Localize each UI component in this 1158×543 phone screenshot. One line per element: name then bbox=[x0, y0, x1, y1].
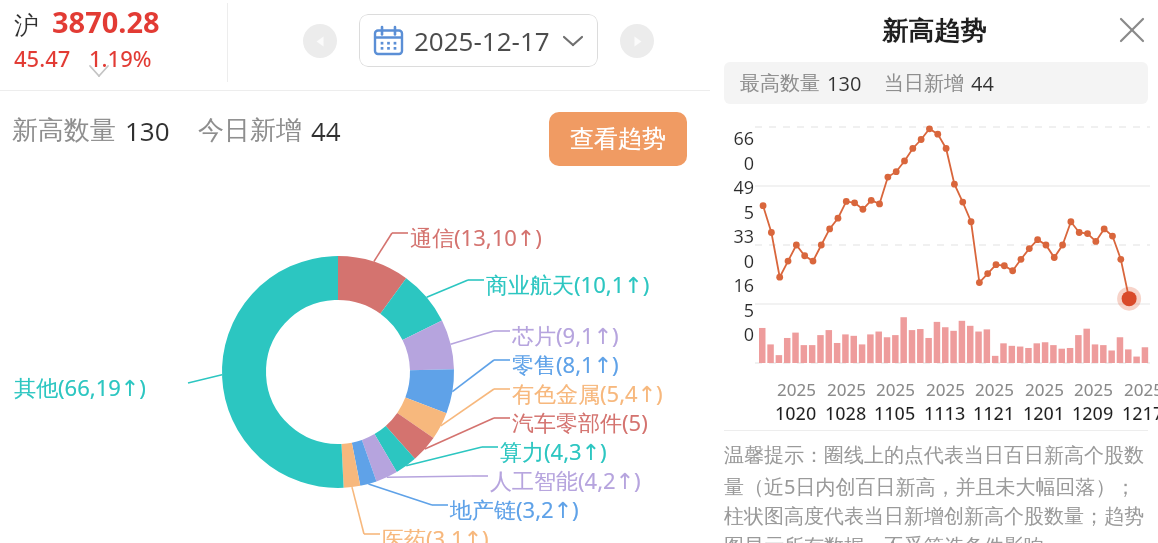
staticText: 1113 bbox=[924, 401, 966, 426]
staticText: 通信(13,10↑) bbox=[410, 222, 542, 252]
staticText: 3870.28 bbox=[52, 2, 160, 41]
staticText: 495 bbox=[724, 175, 754, 225]
staticText: 0 bbox=[724, 322, 754, 347]
staticText: 2025 bbox=[1124, 378, 1158, 401]
staticText: 商业航天(10,1↑) bbox=[486, 269, 650, 299]
staticText: 沪 bbox=[14, 10, 39, 41]
button[interactable]: 2025-12-17 bbox=[359, 14, 598, 67]
staticText: 660 bbox=[724, 126, 754, 176]
staticText: 人工智能(4,2↑) bbox=[490, 465, 641, 495]
staticText: 165 bbox=[724, 273, 754, 323]
staticText: 新高趋势 bbox=[882, 15, 986, 48]
staticText: 最高数量 bbox=[740, 71, 820, 96]
staticText: 1.19% bbox=[89, 43, 152, 73]
staticText: 1217 bbox=[1122, 401, 1158, 426]
button[interactable]: Next day bbox=[620, 24, 654, 58]
staticText: 2025 bbox=[1074, 378, 1113, 401]
button[interactable]: Close bbox=[1110, 8, 1154, 52]
staticText: 有色金属(5,4↑) bbox=[512, 378, 663, 408]
staticText: 1105 bbox=[874, 401, 916, 426]
staticText: 2025 bbox=[777, 378, 816, 401]
staticText: 45.47 bbox=[14, 43, 71, 73]
button[interactable]: Previous day bbox=[303, 24, 337, 58]
staticText: 其他(66,19↑) bbox=[14, 372, 146, 402]
staticText: 今日新增 bbox=[198, 114, 302, 147]
staticText: 芯片(9,1↑) bbox=[512, 320, 619, 350]
staticText: 查看趋势 bbox=[570, 124, 666, 154]
staticText: 2025 bbox=[827, 378, 866, 401]
staticText: 1201 bbox=[1023, 401, 1065, 426]
button[interactable]: 查看趋势 bbox=[549, 112, 687, 166]
staticText: 汽车零部件(5) bbox=[512, 407, 648, 437]
staticText: 2025 bbox=[1025, 378, 1064, 401]
staticText: 44 bbox=[971, 70, 994, 97]
staticText: 1028 bbox=[825, 401, 867, 426]
staticText: 130 bbox=[125, 113, 170, 148]
staticText: 新高数量 bbox=[12, 114, 116, 147]
staticText: 地产链(3,2↑) bbox=[450, 494, 579, 524]
staticText: 330 bbox=[724, 224, 754, 274]
staticText: 算力(4,3↑) bbox=[500, 436, 607, 466]
staticText: 2025 bbox=[975, 378, 1014, 401]
staticText: 温馨提示：圈线上的点代表当日百日新高个股数量（近5日内创百日新高，并且未大幅回落… bbox=[724, 443, 1148, 543]
staticText: 130 bbox=[827, 70, 862, 97]
staticText: 零售(8,1↑) bbox=[512, 349, 619, 379]
staticText: 1121 bbox=[973, 401, 1015, 426]
staticText: 当日新增 bbox=[884, 71, 964, 96]
staticText: 1020 bbox=[775, 401, 817, 426]
staticText: 2025 bbox=[876, 378, 915, 401]
staticText: 2025-12-17 bbox=[414, 23, 550, 58]
staticText: 医药(3,1↑) bbox=[382, 523, 489, 543]
staticText: 44 bbox=[311, 113, 341, 148]
staticText: 1209 bbox=[1072, 401, 1114, 426]
staticText: 2025 bbox=[926, 378, 965, 401]
